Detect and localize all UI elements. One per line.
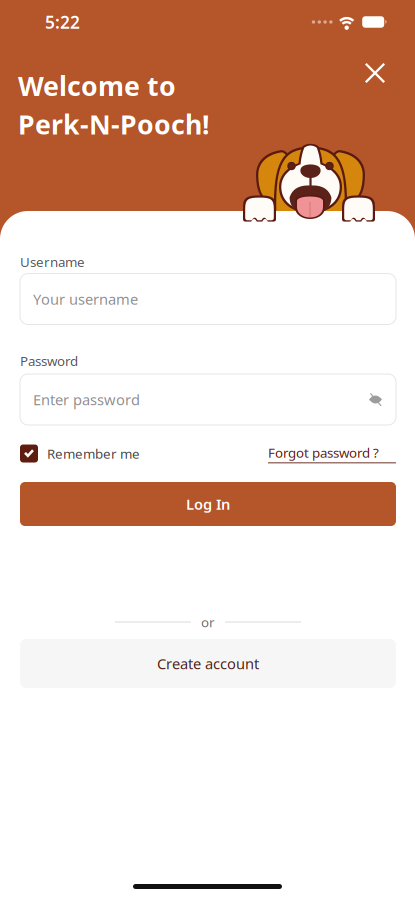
staticText: Your username — [33, 289, 138, 309]
staticText: Password — [20, 352, 78, 370]
staticText: Create account — [157, 654, 259, 673]
button[interactable]: Log In — [20, 482, 396, 526]
staticText: Username — [20, 253, 85, 271]
staticText: Enter password — [33, 390, 140, 409]
staticText: 5:22 — [45, 10, 80, 33]
staticText: Welcome to — [18, 68, 176, 103]
button[interactable]: Create account — [20, 639, 396, 688]
button[interactable]: Forgot password ? — [268, 444, 396, 463]
button[interactable]: Remember me — [20, 444, 140, 462]
staticText: Log In — [186, 494, 230, 514]
staticText: or — [201, 613, 215, 631]
button[interactable]: Close — [358, 56, 392, 90]
staticText: Forgot password ? — [268, 444, 379, 461]
staticText: Perk-N-Pooch! — [18, 106, 210, 142]
staticText: Remember me — [47, 445, 140, 462]
